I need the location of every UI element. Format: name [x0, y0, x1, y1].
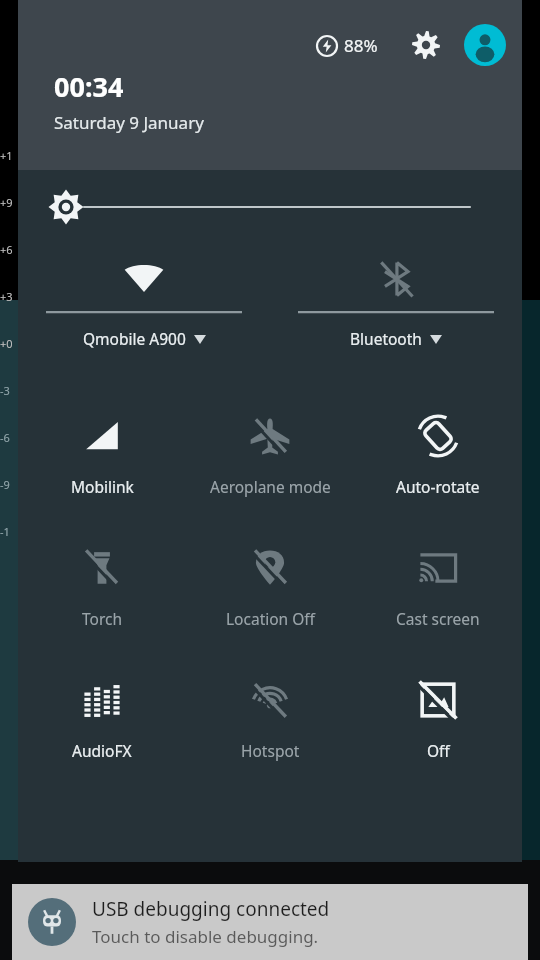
staticText: USB debugging connected	[92, 896, 330, 922]
staticText: Saturday 9 January	[54, 111, 204, 134]
button[interactable]: Aeroplane mode	[186, 392, 354, 524]
staticText: Mobilink	[71, 476, 134, 497]
staticText: +1	[0, 148, 18, 162]
staticText: Hotspot	[241, 740, 300, 761]
staticText: +6	[0, 242, 18, 256]
staticText: Location Off	[226, 608, 315, 629]
button[interactable]: Bluetooth	[270, 244, 522, 374]
staticText: -6	[0, 430, 18, 444]
staticText: -1	[0, 524, 18, 538]
staticText: Off	[427, 740, 450, 761]
button[interactable]: Torch	[18, 524, 186, 656]
button[interactable]: Battery charging 88 percent	[314, 34, 380, 57]
staticText: +9	[0, 195, 18, 209]
button[interactable]: Location Off	[186, 524, 354, 656]
staticText: +3	[0, 289, 18, 303]
button[interactable]: 00:34	[54, 68, 204, 134]
button[interactable]: AudioFX	[18, 656, 186, 788]
staticText: 88%	[344, 34, 378, 57]
staticText: +0	[0, 336, 18, 350]
staticText: Aeroplane mode	[210, 476, 331, 497]
staticText: Torch	[82, 608, 123, 629]
button[interactable]: Cast screen	[354, 524, 522, 656]
staticText: Bluetooth	[350, 328, 422, 349]
staticText: Qmobile A900	[83, 328, 186, 349]
button[interactable]: Off	[354, 656, 522, 788]
button[interactable]: Settings	[406, 25, 446, 65]
button[interactable]	[18, 170, 522, 244]
button[interactable]: Auto-rotate	[354, 392, 522, 524]
staticText: 00:34	[54, 68, 124, 105]
staticText: Cast screen	[396, 608, 480, 629]
button[interactable]: Hotspot	[186, 656, 354, 788]
staticText: -9	[0, 477, 18, 491]
staticText: AudioFX	[72, 740, 132, 761]
staticText: -3	[0, 383, 18, 397]
button[interactable]: USB debugging connected	[12, 884, 528, 960]
button[interactable]: User profile	[464, 24, 506, 66]
staticText: Auto-rotate	[396, 476, 480, 497]
button[interactable]: Mobilink	[18, 392, 186, 524]
button[interactable]: Qmobile A900	[18, 244, 270, 374]
staticText: Touch to disable debugging.	[92, 925, 319, 948]
